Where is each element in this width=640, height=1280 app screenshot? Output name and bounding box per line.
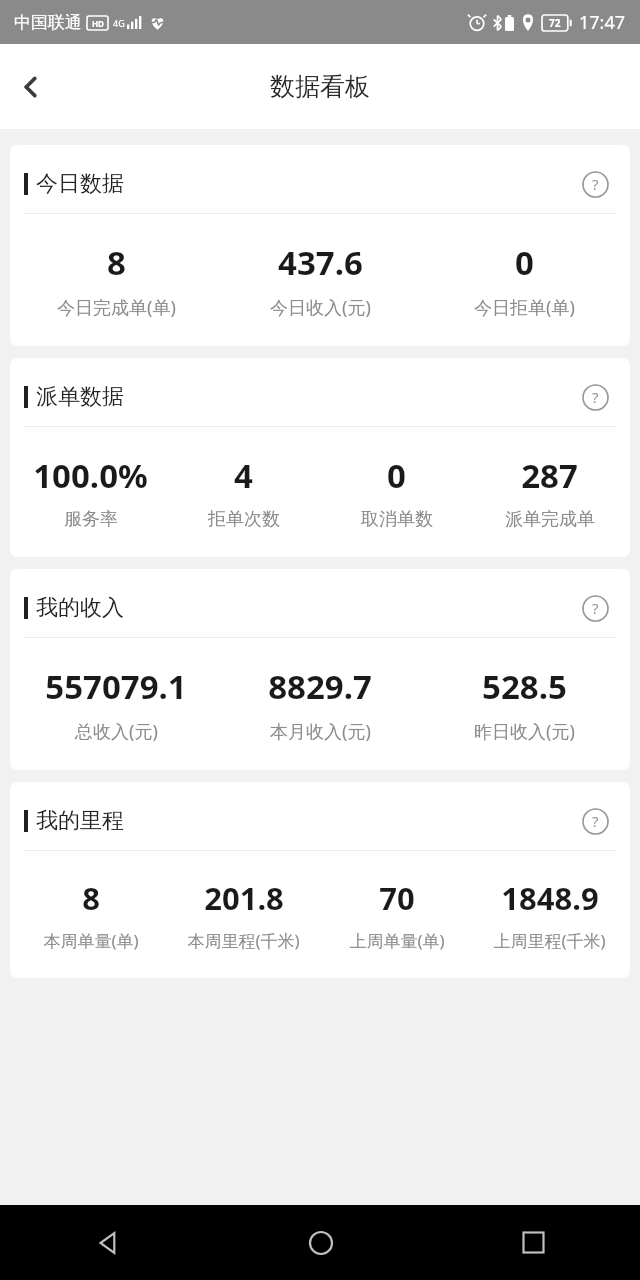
button[interactable]: 派单数据 <box>10 358 630 557</box>
staticText: 528.5 <box>482 664 567 709</box>
staticText: 72 <box>549 16 561 30</box>
staticText: 8 <box>82 877 100 919</box>
button[interactable]: 帮助 <box>578 167 612 201</box>
button[interactable]: 帮助 <box>578 380 612 414</box>
staticText: 437.6 <box>278 240 363 285</box>
staticText: 557079.1 <box>45 664 187 709</box>
button[interactable]: 最近任务 <box>427 1205 640 1280</box>
staticText: 总收入(元) <box>75 719 158 744</box>
button[interactable]: 我的收入 <box>10 569 630 770</box>
staticText: HD <box>92 18 104 29</box>
staticText: 拒单次数 <box>208 508 280 531</box>
staticText: 0 <box>387 453 406 498</box>
staticText: 今日完成单(单) <box>57 295 176 320</box>
staticText: 今日数据 <box>36 170 124 198</box>
button[interactable]: 帮助 <box>578 591 612 625</box>
button[interactable]: 我的里程 <box>10 782 630 978</box>
staticText: 取消单数 <box>361 508 433 531</box>
staticText: 派单完成单 <box>505 508 595 531</box>
staticText: 本月收入(元) <box>270 719 371 744</box>
staticText: ? <box>592 598 599 618</box>
button[interactable]: 返回 <box>0 1205 214 1280</box>
staticText: 数据看板 <box>270 71 370 102</box>
staticText: 0 <box>515 240 534 285</box>
staticText: 17:47 <box>579 10 626 35</box>
staticText: 201.8 <box>204 877 284 919</box>
staticText: 上周单量(单) <box>349 929 445 952</box>
staticText: 8829.7 <box>268 664 372 709</box>
button[interactable]: 今日数据 <box>10 145 630 346</box>
staticText: 我的里程 <box>36 807 124 835</box>
staticText: 1848.9 <box>501 877 599 919</box>
staticText: 4G <box>113 17 125 29</box>
staticText: ? <box>592 811 599 831</box>
staticText: ? <box>592 387 599 407</box>
staticText: 今日拒单(单) <box>474 295 575 320</box>
button[interactable]: 返回 <box>0 56 62 118</box>
staticText: 本周单量(单) <box>43 929 139 952</box>
staticText: 70 <box>379 877 415 919</box>
staticText: 287 <box>521 453 578 498</box>
button[interactable]: 主页 <box>214 1205 427 1280</box>
staticText: 上周里程(千米) <box>493 929 606 952</box>
staticText: 派单数据 <box>36 383 124 411</box>
staticText: 中国联通 <box>14 12 82 33</box>
staticText: 服务率 <box>64 508 118 531</box>
staticText: 8 <box>107 240 126 285</box>
staticText: 4 <box>234 453 253 498</box>
staticText: 我的收入 <box>36 594 124 622</box>
staticText: 本周里程(千米) <box>187 929 300 952</box>
staticText: 100.0% <box>33 453 148 498</box>
staticText: 昨日收入(元) <box>474 719 575 744</box>
staticText: 今日收入(元) <box>270 295 371 320</box>
staticText: ? <box>592 174 599 194</box>
button[interactable]: 帮助 <box>578 804 612 838</box>
